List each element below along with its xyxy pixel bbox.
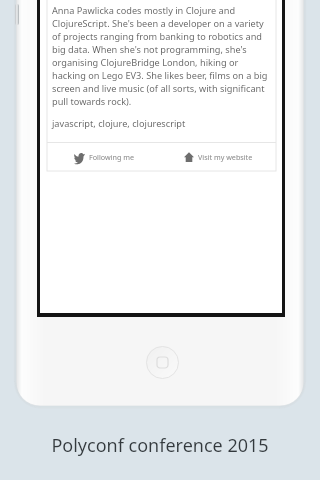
button[interactable]: Home [146,346,179,379]
button[interactable]: Visit my website [161,143,276,171]
staticText: javascript, clojure, clojurescript [52,117,186,130]
staticText: Polyconf conference 2015 [51,433,269,458]
other: Volume button [15,4,19,25]
staticText: Anna Pawlicka codes mostly in Clojure an… [52,4,273,108]
staticText: Following me [89,152,135,162]
button[interactable]: Following me [47,143,161,171]
staticText: Visit my website [198,152,253,162]
